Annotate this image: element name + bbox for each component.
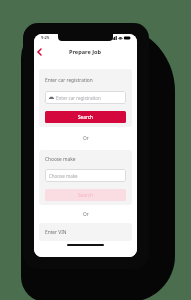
staticText: Or bbox=[83, 135, 89, 142]
button[interactable]: Search bbox=[45, 189, 126, 201]
staticText: Enter car registration bbox=[45, 77, 93, 84]
staticText: Enter VIN bbox=[45, 229, 67, 236]
staticText: Prepare Job bbox=[69, 48, 102, 56]
staticText: Or bbox=[83, 211, 89, 218]
staticText: Search bbox=[78, 192, 93, 198]
button[interactable]: Choose make bbox=[45, 169, 126, 182]
button[interactable]: Enter car registration bbox=[45, 91, 126, 104]
staticText: 9:25 bbox=[41, 35, 50, 41]
button[interactable]: Back bbox=[34, 45, 45, 59]
staticText: Choose make bbox=[49, 173, 78, 179]
button[interactable]: Search bbox=[45, 111, 126, 123]
staticText: Search bbox=[78, 114, 93, 120]
staticText: Choose make bbox=[45, 156, 76, 163]
staticText: Enter car registration bbox=[56, 95, 101, 101]
